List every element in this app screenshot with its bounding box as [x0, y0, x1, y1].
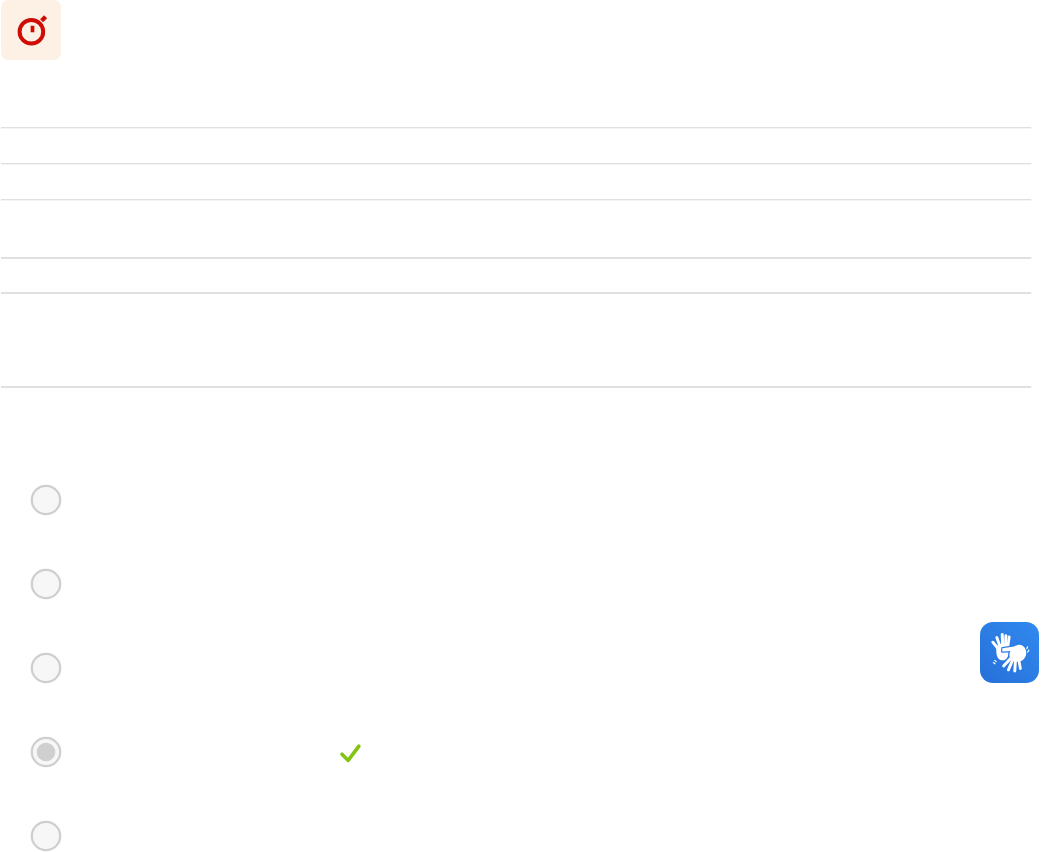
button[interactable]: Option — [31, 569, 61, 599]
button[interactable]: Option — [31, 821, 61, 851]
button[interactable]: Option selected — [31, 737, 61, 767]
button[interactable]: Option — [31, 653, 61, 683]
button[interactable]: Accessibility options — [980, 622, 1039, 683]
button[interactable]: Option — [31, 485, 61, 515]
button[interactable]: Timer — [1, 0, 61, 60]
